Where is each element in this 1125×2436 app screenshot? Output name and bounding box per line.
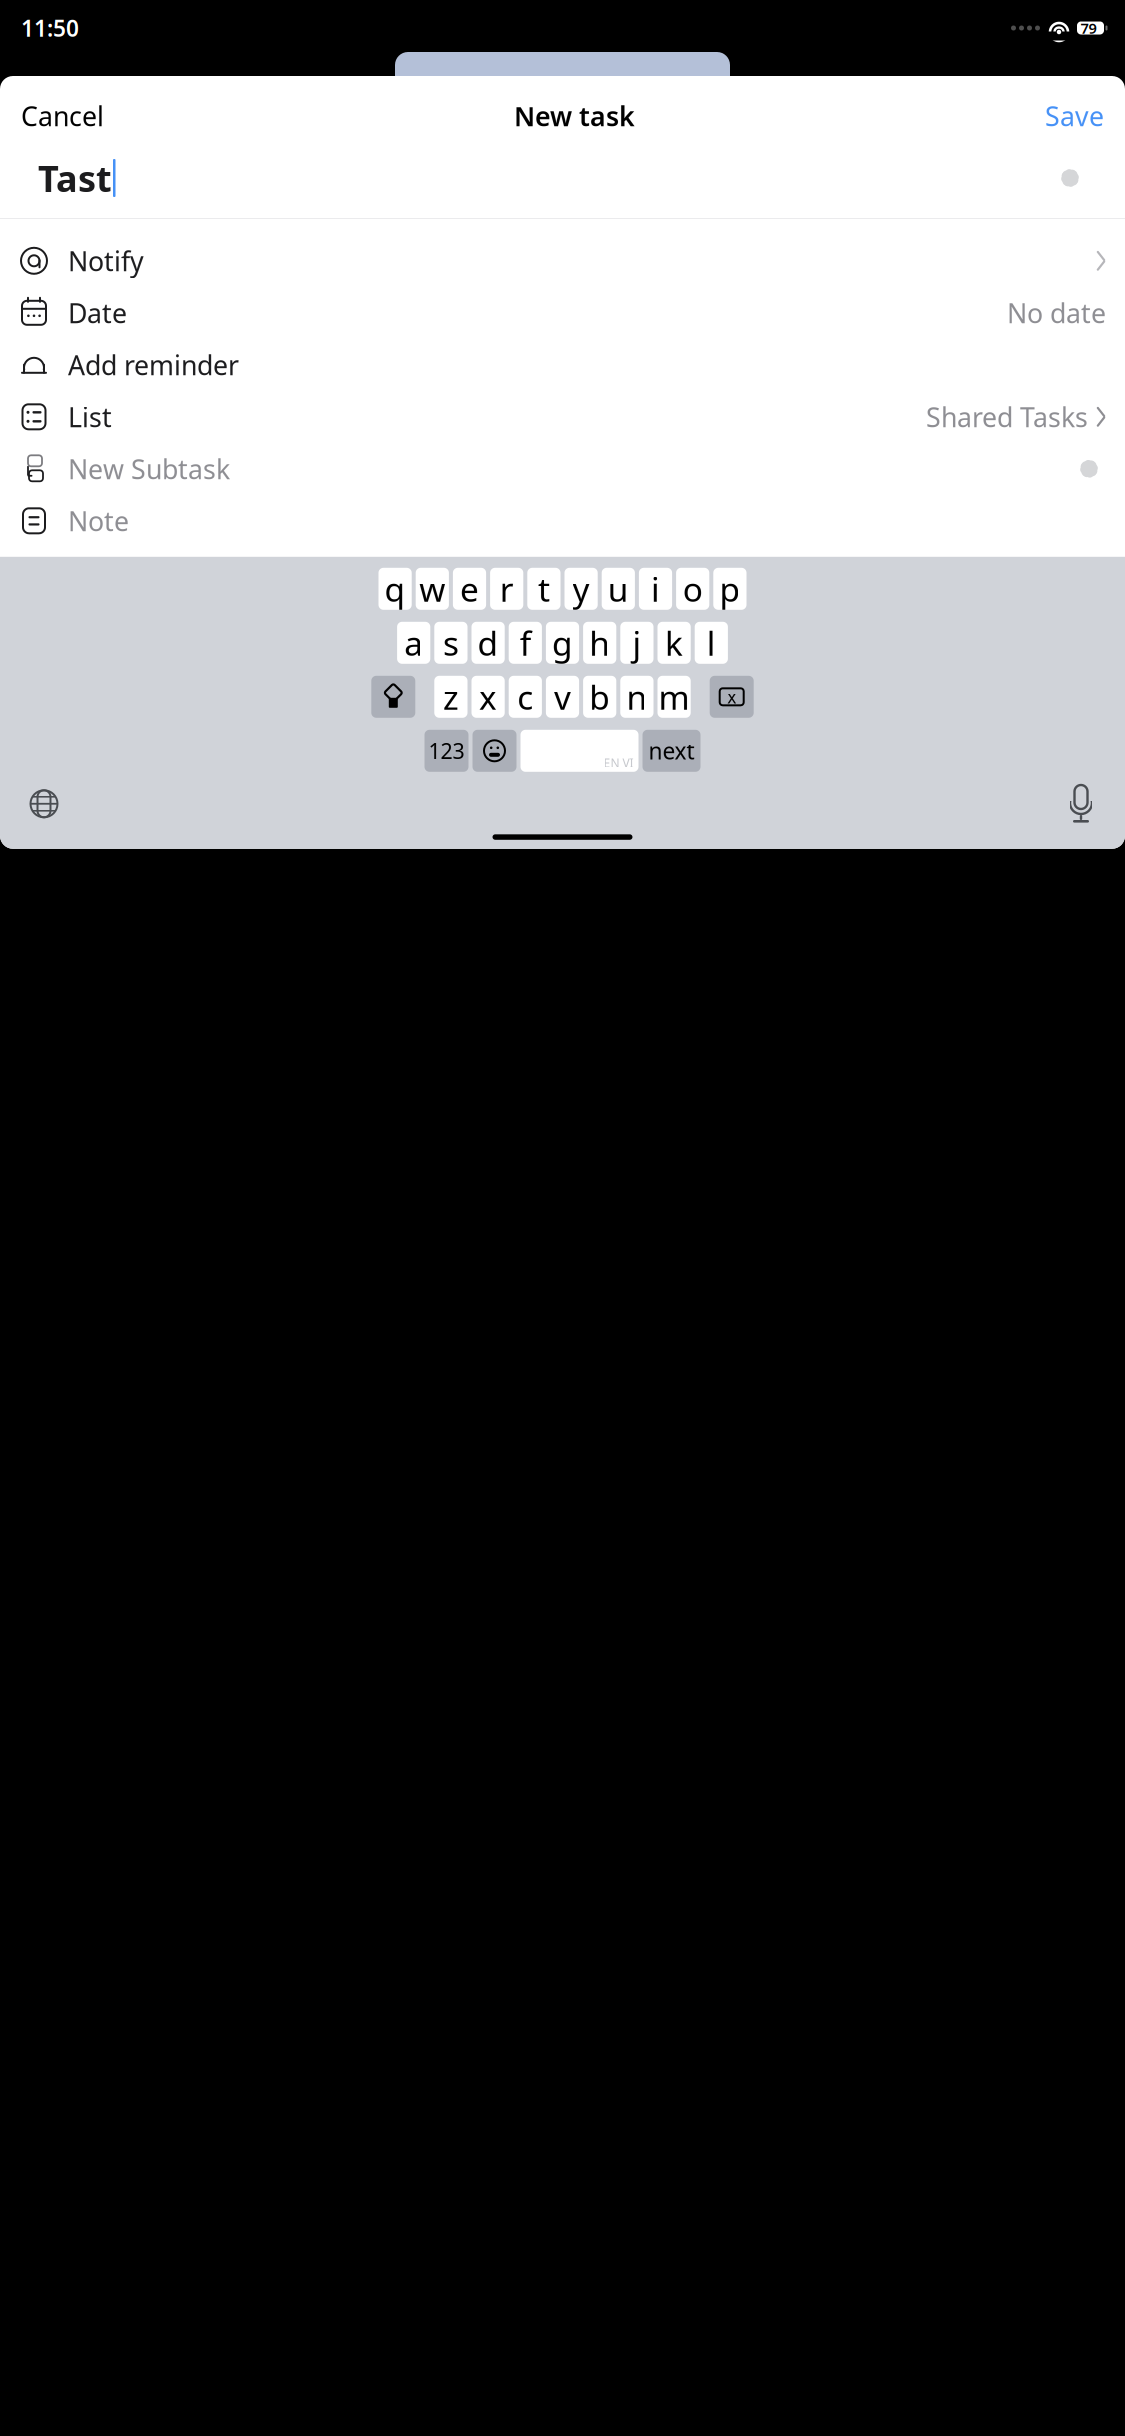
button[interactable]: next	[642, 730, 700, 772]
staticText: EN VI	[603, 755, 633, 771]
staticText: h	[589, 621, 610, 665]
staticText: a	[404, 621, 423, 665]
button[interactable]: b	[583, 676, 616, 718]
staticText: l	[707, 621, 716, 665]
button[interactable]: k	[657, 622, 691, 664]
button[interactable]: a	[397, 622, 430, 664]
staticText: w	[419, 567, 445, 611]
staticText: 11:50	[21, 13, 79, 43]
staticText: No date	[1007, 295, 1106, 330]
staticText: d	[478, 621, 499, 665]
staticText: c	[517, 675, 533, 719]
button[interactable]: w	[416, 568, 449, 610]
button[interactable]: g	[546, 622, 579, 664]
staticText: z	[443, 675, 459, 719]
button[interactable]: y	[564, 568, 598, 610]
staticText: t	[538, 567, 550, 611]
staticText: Save	[1045, 98, 1104, 134]
button[interactable]: p	[713, 568, 746, 610]
button[interactable]: Mark as important	[1053, 161, 1087, 195]
staticText: m	[659, 675, 690, 719]
button[interactable]: f	[509, 622, 542, 664]
button[interactable]: 123	[424, 730, 468, 772]
button[interactable]: Cancel	[21, 94, 104, 138]
staticText: Tast	[38, 154, 112, 202]
staticText: e	[460, 567, 479, 611]
staticText: 123	[428, 737, 464, 765]
button[interactable]: c	[509, 676, 542, 718]
staticText: g	[552, 621, 573, 665]
staticText: next	[648, 736, 694, 766]
button[interactable]: Delete	[710, 676, 754, 718]
button[interactable]: d	[471, 622, 505, 664]
staticText: New task	[514, 98, 635, 134]
button[interactable]: e	[453, 568, 486, 610]
staticText: s	[443, 621, 459, 665]
button[interactable]: s	[434, 622, 467, 664]
button[interactable]: j	[620, 622, 653, 664]
staticText: q	[385, 567, 406, 611]
button[interactable]: Note	[0, 495, 1125, 547]
button[interactable]: Notify	[0, 235, 1125, 287]
button[interactable]: n	[620, 676, 653, 718]
staticText: y	[573, 567, 590, 611]
staticText: p	[719, 567, 740, 611]
button[interactable]: x	[471, 676, 505, 718]
staticText: Cancel	[21, 98, 104, 134]
staticText: x	[727, 685, 736, 708]
staticText: b	[589, 675, 610, 719]
staticText: v	[554, 675, 571, 719]
staticText: r	[500, 567, 514, 611]
button[interactable]: h	[583, 622, 616, 664]
staticText: 79	[1080, 18, 1096, 38]
staticText: n	[626, 675, 647, 719]
button[interactable]: Save	[1045, 94, 1104, 138]
button[interactable]: i	[639, 568, 672, 610]
button[interactable]: Dictate	[1059, 782, 1103, 826]
staticText: j	[632, 621, 641, 665]
button[interactable]: Add reminder	[0, 339, 1125, 391]
button[interactable]: Emoji	[472, 730, 516, 772]
button[interactable]: u	[602, 568, 635, 610]
staticText: Note	[68, 503, 129, 538]
staticText: i	[651, 567, 660, 611]
button[interactable]: v	[546, 676, 579, 718]
staticText: Add reminder	[68, 347, 239, 382]
staticText: Date	[68, 295, 127, 330]
button[interactable]: Date	[0, 287, 1125, 339]
staticText: New Subtask	[68, 451, 230, 486]
staticText: f	[520, 621, 531, 665]
button[interactable]: t	[527, 568, 560, 610]
staticText: Shared Tasks	[926, 399, 1088, 434]
button[interactable]: z	[434, 676, 467, 718]
staticText: k	[665, 621, 683, 665]
staticText: u	[608, 567, 629, 611]
button[interactable]: Space	[520, 730, 638, 772]
button[interactable]: q	[378, 568, 412, 610]
button[interactable]: o	[676, 568, 709, 610]
staticText: List	[68, 399, 112, 434]
button[interactable]: l	[695, 622, 728, 664]
staticText: x	[479, 675, 497, 719]
button[interactable]: Shift	[371, 676, 415, 718]
button[interactable]: r	[490, 568, 523, 610]
staticText: o	[683, 567, 703, 611]
button[interactable]: New Subtask	[0, 443, 1125, 495]
button[interactable]: List	[0, 391, 1125, 443]
button[interactable]: Change keyboard	[22, 782, 66, 826]
staticText: Notify	[68, 243, 144, 278]
button[interactable]: m	[657, 676, 691, 718]
button[interactable]: Mark subtask as important	[1072, 452, 1106, 486]
